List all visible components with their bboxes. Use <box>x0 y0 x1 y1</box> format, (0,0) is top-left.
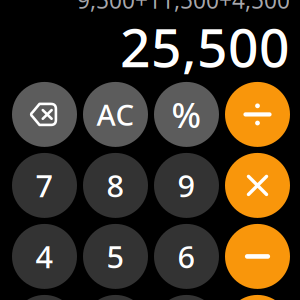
button[interactable]: Multiply <box>225 153 290 218</box>
staticText: 9 <box>177 165 195 206</box>
button[interactable]: 9 <box>154 153 219 218</box>
button[interactable]: 3 <box>154 295 219 300</box>
staticText: 9,500+11,500+4,500 <box>77 0 290 15</box>
button[interactable]: 6 <box>154 224 219 289</box>
button[interactable]: Add <box>225 295 290 300</box>
staticText: 6 <box>177 236 195 277</box>
button[interactable]: 1 <box>12 295 77 300</box>
button[interactable]: 7 <box>12 153 77 218</box>
button[interactable]: AC <box>83 82 148 147</box>
button[interactable]: Delete <box>12 82 77 147</box>
button[interactable]: % <box>154 82 219 147</box>
button[interactable]: 2 <box>83 295 148 300</box>
staticText: 4 <box>35 236 53 277</box>
staticText: % <box>171 91 201 137</box>
staticText: 25,500 <box>120 11 290 82</box>
staticText: 5 <box>106 236 124 277</box>
button[interactable]: Subtract <box>225 224 290 289</box>
button[interactable]: 8 <box>83 153 148 218</box>
button[interactable]: 5 <box>83 224 148 289</box>
button[interactable]: Divide <box>225 82 290 147</box>
staticText: 7 <box>35 165 53 206</box>
staticText: AC <box>96 95 134 134</box>
staticText: 8 <box>106 165 124 206</box>
button[interactable]: 4 <box>12 224 77 289</box>
